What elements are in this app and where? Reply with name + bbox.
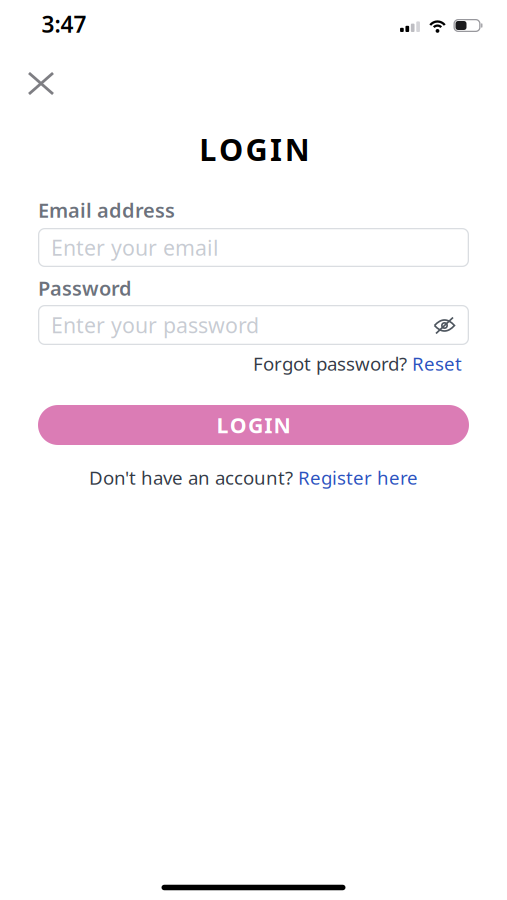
button[interactable]: Password: [38, 305, 469, 345]
staticText: G: [248, 411, 263, 439]
staticText: Register here: [298, 465, 418, 490]
staticText: Enter your password: [51, 311, 259, 339]
staticText: I: [270, 129, 282, 169]
staticText: 3:47: [41, 9, 86, 39]
button[interactable]: Close: [21, 65, 61, 101]
staticText: Enter your email: [51, 233, 219, 262]
staticText: Don't have an account?: [89, 465, 298, 490]
staticText: Forgot password?: [253, 351, 412, 376]
button[interactable]: Email address: [38, 228, 469, 267]
button[interactable]: Register here: [298, 465, 418, 490]
staticText: G: [245, 129, 267, 169]
staticText: L: [216, 411, 228, 439]
staticText: O: [230, 411, 247, 439]
staticText: Email address: [38, 197, 175, 223]
staticText: N: [285, 129, 310, 169]
button[interactable]: L: [38, 405, 469, 445]
staticText: O: [219, 129, 243, 169]
staticText: N: [274, 411, 291, 439]
button[interactable]: Reset: [412, 351, 462, 376]
staticText: I: [264, 411, 272, 439]
staticText: L: [199, 129, 216, 169]
button[interactable]: Show password: [425, 308, 463, 342]
staticText: Password: [38, 275, 132, 301]
staticText: Reset: [412, 351, 462, 376]
